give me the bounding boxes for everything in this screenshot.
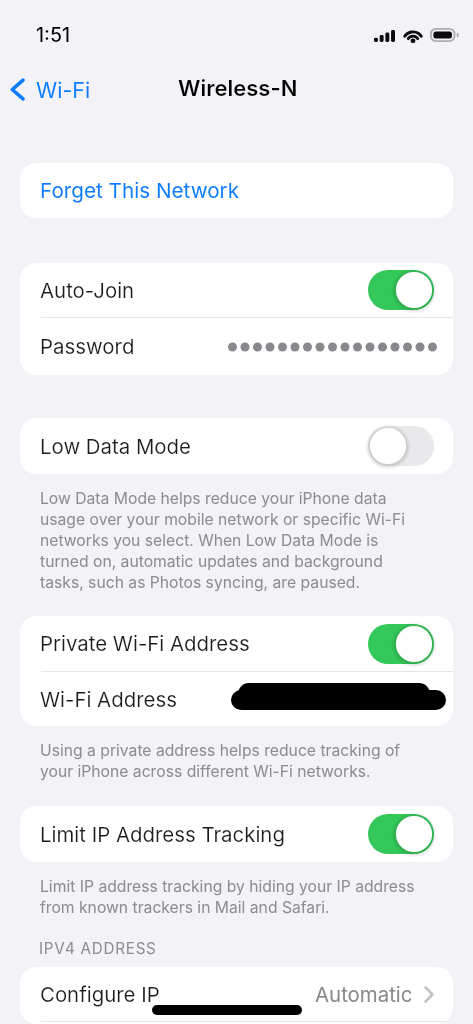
staticText: Limit IP address tracking by hiding your…: [40, 877, 425, 917]
button[interactable]: Low Data Mode: [20, 418, 453, 474]
button[interactable]: Configure IP: [20, 967, 453, 1021]
button[interactable]: Limit IP Address Tracking toggle, on: [368, 814, 434, 854]
staticText: IPV4 ADDRESS: [39, 939, 157, 957]
staticText: Low Data Mode: [40, 434, 191, 459]
button[interactable]: Low Data Mode toggle, off: [368, 426, 434, 466]
staticText: Limit IP Address Tracking: [40, 822, 285, 847]
staticText: Forget This Network: [40, 178, 240, 203]
staticText: Wi-Fi: [36, 77, 91, 103]
button[interactable]: Limit IP Address Tracking: [20, 806, 453, 862]
button[interactable]: Forget This Network: [20, 163, 453, 218]
staticText: Auto-Join: [40, 278, 135, 303]
staticText: 1:51: [36, 23, 71, 47]
staticText: Password: [40, 334, 135, 359]
staticText: Private Wi-Fi Address: [40, 631, 250, 656]
button[interactable]: Wi-Fi Address: [20, 672, 453, 726]
staticText: Using a private address helps reduce tra…: [40, 741, 425, 781]
button[interactable]: Private Wi-Fi Address toggle, on: [368, 624, 434, 664]
button[interactable]: Auto-Join toggle, on: [368, 270, 434, 310]
staticText: Wi-Fi Address: [40, 687, 177, 712]
staticText: Automatic: [315, 982, 413, 1007]
button[interactable]: Private Wi-Fi Address: [20, 616, 453, 671]
staticText: Low Data Mode helps reduce your iPhone d…: [40, 489, 425, 592]
button[interactable]: Wi-Fi: [6, 72, 95, 106]
button[interactable]: Password: [20, 318, 453, 375]
staticText: Configure IP: [40, 982, 160, 1007]
button[interactable]: Auto-Join: [20, 263, 453, 317]
staticText: Wireless-N: [178, 75, 298, 102]
